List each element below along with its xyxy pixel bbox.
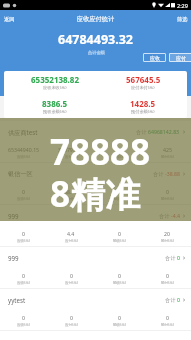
staticText: 应付未付(元) — [131, 85, 155, 91]
staticText: 4.4 — [67, 230, 75, 237]
button[interactable]: yytest — [0, 289, 191, 331]
staticText: 0 — [118, 230, 121, 237]
staticText: 376797.32 — [58, 146, 84, 153]
staticText: 0 — [118, 146, 121, 153]
staticText: 64784493.32 — [58, 31, 134, 48]
staticText: 0 — [166, 314, 169, 321]
button[interactable]: 银信一区 — [0, 163, 191, 205]
staticText: 银信一区 — [8, 170, 33, 178]
staticText: 65344940.15 — [8, 146, 40, 153]
staticText: 0 — [118, 188, 121, 195]
staticText: 合计 — [165, 254, 177, 261]
staticText: 合计 — [159, 212, 171, 219]
staticText: 8386.5 — [42, 98, 68, 109]
staticText: 应收 — [150, 55, 160, 61]
staticText: 78888 — [50, 128, 151, 176]
staticText: 999 — [8, 254, 19, 262]
staticText: 预付余额(元) — [131, 109, 155, 115]
staticText: 预收(元) — [113, 196, 126, 201]
staticText: -38.88 — [165, 170, 180, 177]
staticText: 64968142.83 — [148, 128, 180, 135]
button[interactable]: 999 — [0, 247, 191, 289]
staticText: 1428.5 — [130, 98, 156, 109]
staticText: 0 — [22, 230, 25, 237]
staticText: 应收(元) — [17, 238, 30, 243]
button[interactable]: 筛选 — [169, 10, 191, 28]
staticText: 预收(元) — [113, 280, 126, 285]
staticText: 应付(元) — [65, 280, 78, 285]
staticText: 预收(元) — [113, 322, 126, 327]
staticText: 0 — [118, 272, 121, 279]
staticText: 应收(元) — [17, 196, 30, 201]
staticText: 预付(元) — [161, 280, 174, 285]
staticText: 0 — [22, 272, 25, 279]
staticText: 预付(元) — [161, 322, 174, 327]
button[interactable]: 应收 — [143, 53, 166, 62]
staticText: 预收(元) — [113, 238, 126, 243]
staticText: 合计 — [136, 128, 148, 135]
staticText: 425 — [163, 146, 172, 153]
staticText: 筛选 — [177, 16, 188, 23]
staticText: 0 — [166, 188, 169, 195]
staticText: 0 — [22, 314, 25, 321]
staticText: 0 — [70, 272, 73, 279]
staticText: 预付(元) — [161, 196, 174, 201]
staticText: 预付(元) — [161, 238, 174, 243]
staticText: 合计 — [165, 296, 177, 303]
staticText: 预付(元) — [161, 154, 174, 159]
staticText: 应收(元) — [17, 154, 30, 159]
staticText: 返回 — [4, 16, 15, 23]
staticText: yytest — [8, 296, 26, 304]
staticText: 供应商test — [8, 128, 38, 136]
staticText: 合计 — [153, 170, 165, 177]
staticText: 999 — [8, 212, 19, 220]
staticText: 预收(元) — [113, 154, 126, 159]
staticText: 20 — [164, 230, 170, 237]
button[interactable]: 999 — [0, 205, 191, 247]
staticText: 0 — [177, 254, 180, 261]
staticText: 应收(元) — [17, 322, 30, 327]
staticText: 预收余额(元) — [43, 109, 67, 115]
staticText: 38.88 — [64, 188, 78, 195]
staticText: 应付 — [176, 55, 186, 61]
staticText: 应付(元) — [65, 322, 78, 327]
staticText: 8精准 — [50, 170, 141, 218]
staticText: 应收(元) — [17, 280, 30, 285]
staticText: 0 — [118, 314, 121, 321]
staticText: 0 — [22, 188, 25, 195]
staticText: 65352138.82 — [31, 74, 80, 85]
staticText: 应收应付统计 — [77, 15, 115, 23]
button[interactable]: 应付 — [169, 53, 191, 62]
staticText: 应付(元) — [65, 154, 78, 159]
staticText: -4.4 — [171, 212, 180, 219]
staticText: 应付(元) — [65, 196, 78, 201]
staticText: 应收未收(元) — [43, 85, 67, 91]
button[interactable]: 供应商test — [0, 121, 191, 163]
button[interactable]: 返回 — [0, 10, 23, 28]
staticText: 合计金额 — [88, 50, 105, 55]
staticText: 567645.5 — [126, 74, 161, 85]
staticText: 0 — [177, 296, 180, 303]
staticText: 2:29 — [177, 2, 188, 9]
staticText: 0 — [166, 272, 169, 279]
staticText: 0 — [70, 314, 73, 321]
staticText: 应付(元) — [65, 238, 78, 243]
